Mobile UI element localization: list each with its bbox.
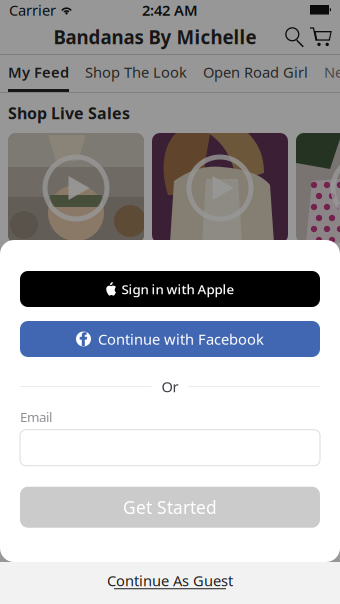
button[interactable]: Continue As Guest xyxy=(0,562,340,604)
staticText: Email xyxy=(20,408,52,426)
staticText: Carrier xyxy=(9,0,56,20)
staticText: Shop Live Sales xyxy=(8,102,130,124)
staticText: Or xyxy=(161,377,178,396)
staticText: Get Started xyxy=(123,496,217,519)
button[interactable]: Sign in with Apple xyxy=(20,271,320,307)
staticText: Necklaces xyxy=(324,62,340,82)
button[interactable]: Shopping cart xyxy=(308,22,334,52)
staticText: Continue As Guest xyxy=(107,571,233,590)
button[interactable]: Search xyxy=(282,22,308,52)
button[interactable]: My Feed xyxy=(0,55,77,92)
button[interactable]: Necklaces xyxy=(316,55,340,92)
button[interactable]: Get Started xyxy=(20,487,320,528)
staticText: Bandanas By Michelle xyxy=(53,25,256,49)
staticText: 2:42 AM xyxy=(142,0,198,20)
button[interactable]: Shop The Look xyxy=(77,55,195,92)
staticText: Continue with Facebook xyxy=(98,329,264,349)
button[interactable]: Continue with Facebook xyxy=(20,321,320,357)
staticText: Open Road Girl xyxy=(203,62,308,82)
button[interactable]: Open Road Girl xyxy=(195,55,316,92)
staticText: My Feed xyxy=(8,62,69,82)
staticText: Shop The Look xyxy=(85,62,187,82)
staticText: Sign in with Apple xyxy=(121,280,234,298)
